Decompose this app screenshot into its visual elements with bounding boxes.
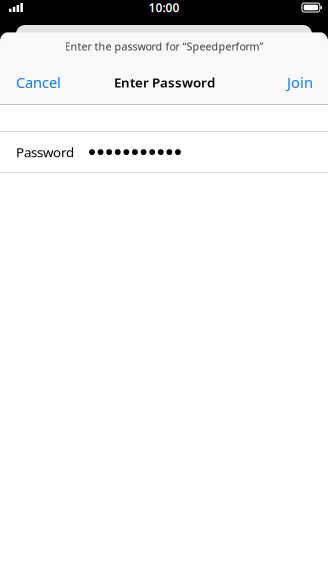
button[interactable]: Cancel: [0, 61, 88, 103]
button[interactable]: Password: [0, 132, 328, 173]
staticText: Password: [16, 143, 74, 161]
staticText: Enter the password for “Speedperform”: [64, 39, 263, 53]
staticText: 10:00: [148, 0, 179, 15]
staticText: Cancel: [16, 73, 61, 92]
staticText: Join: [287, 73, 313, 92]
staticText: Enter Password: [114, 73, 215, 91]
button[interactable]: Join: [241, 61, 328, 103]
